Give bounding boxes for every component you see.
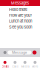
button[interactable]: Send: [32, 50, 36, 54]
button[interactable]: Media: [20, 57, 30, 72]
staticText: More: [31, 65, 38, 68]
staticText: Media: [21, 65, 29, 68]
button[interactable]: Add attachment: [3, 51, 6, 54]
staticText: Message: [12, 50, 27, 54]
button[interactable]: More: [30, 57, 40, 72]
staticText: Chats: [1, 65, 8, 68]
staticText: How are you?: [9, 13, 32, 18]
staticText: See you soon: [9, 24, 32, 29]
staticText: Lunch at noon: [9, 19, 32, 23]
button[interactable]: Calls: [10, 57, 20, 72]
staticText: Hello there: [9, 7, 27, 12]
button[interactable]: Chats: [0, 57, 10, 72]
staticText: Calls: [12, 65, 18, 68]
staticText: Messages: [11, 1, 29, 5]
